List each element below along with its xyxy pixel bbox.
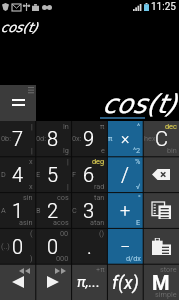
staticText: tan <box>94 193 105 202</box>
button[interactable]: π,... <box>71 264 107 300</box>
staticText: bin <box>167 146 177 155</box>
staticText: + <box>120 200 131 221</box>
staticText: E <box>136 218 141 227</box>
staticText: asin <box>19 218 33 227</box>
staticText: 0 <box>12 235 24 258</box>
staticText: | <box>31 146 33 155</box>
staticText: rad <box>94 182 105 191</box>
staticText: acos <box>53 218 69 227</box>
button[interactable]: Move left <box>0 264 35 300</box>
staticText: 0d: <box>36 134 46 143</box>
button[interactable]: 7 <box>0 121 35 156</box>
staticText: A <box>1 206 6 215</box>
staticText: ) <box>30 254 33 263</box>
staticText: B <box>36 206 41 215</box>
staticText: C <box>155 127 168 150</box>
button[interactable]: 9 <box>71 121 107 156</box>
staticText: deg <box>92 157 105 166</box>
button[interactable]: 8 <box>35 121 71 156</box>
button[interactable]: Equals <box>0 85 36 121</box>
staticText: hex <box>144 134 156 143</box>
staticText: store <box>160 265 177 274</box>
staticText: D <box>1 170 6 179</box>
button[interactable]: 0 <box>35 228 71 264</box>
staticText: 3 <box>83 199 95 222</box>
staticText: cos(t) <box>103 89 178 119</box>
button[interactable]: 0 <box>0 228 35 264</box>
staticText: √ <box>136 182 141 191</box>
staticText: simple <box>155 290 177 299</box>
button[interactable]: 4 <box>0 156 35 192</box>
staticText: × <box>121 129 130 148</box>
staticText: cos <box>57 193 69 202</box>
button[interactable]: 1 <box>0 192 35 228</box>
staticText: x <box>29 157 33 166</box>
staticText: dec <box>165 122 177 131</box>
staticText: cos(t) <box>1 20 39 35</box>
staticText: 4 <box>12 163 24 186</box>
staticText: (..) <box>1 242 10 251</box>
staticText: 1 <box>12 199 24 222</box>
button[interactable]: + <box>107 192 143 228</box>
button[interactable]: C <box>143 121 179 156</box>
staticText: e <box>101 146 105 155</box>
staticText: π <box>108 134 113 143</box>
staticText: ^2 <box>133 146 141 155</box>
staticText: sin <box>23 193 33 202</box>
staticText: π <box>100 122 105 131</box>
staticText: . <box>87 235 92 258</box>
staticText: +π <box>96 265 105 274</box>
staticText: C <box>72 206 77 215</box>
button[interactable]: 3 <box>71 192 107 228</box>
staticText: 9 <box>83 127 95 150</box>
staticText: 0 <box>47 235 59 258</box>
staticText: 6 <box>83 163 95 186</box>
button[interactable]: M <box>143 264 179 300</box>
staticText: lg <box>63 146 69 155</box>
staticText: π,... <box>77 273 101 291</box>
button[interactable]: 5 <box>35 156 71 192</box>
staticText: 5 <box>47 163 59 186</box>
button[interactable]: × <box>107 121 143 156</box>
button[interactable]: Copy <box>143 192 179 228</box>
button[interactable]: Backspace <box>143 156 179 192</box>
button[interactable]: 2 <box>35 192 71 228</box>
staticText: − <box>120 236 131 257</box>
button[interactable]: Move right <box>35 264 71 300</box>
staticText: x <box>29 182 33 191</box>
staticText: 2 <box>47 199 59 222</box>
staticText: E <box>36 170 41 179</box>
staticText: / <box>121 163 129 186</box>
staticText: | <box>67 182 69 191</box>
staticText: ( <box>30 229 33 238</box>
staticText: 0b: <box>1 134 11 143</box>
staticText: () <box>99 229 105 238</box>
button[interactable]: / <box>107 156 143 192</box>
staticText: f(x) <box>112 272 139 293</box>
staticText: % <box>135 157 141 166</box>
staticText: | <box>31 122 33 131</box>
staticText: atan <box>90 218 105 227</box>
staticText: 7 <box>12 127 24 150</box>
staticText: 00 <box>60 229 69 238</box>
staticText: | <box>67 157 69 166</box>
staticText: 8 <box>47 127 59 150</box>
staticText: 000 <box>56 254 69 263</box>
staticText: d/dx <box>126 254 141 263</box>
button[interactable]: . <box>71 228 107 264</box>
button[interactable]: f(x) <box>107 264 143 300</box>
button[interactable]: − <box>107 228 143 264</box>
staticText: ^ <box>137 122 141 131</box>
staticText: M <box>152 271 170 294</box>
button[interactable]: Paste <box>143 228 179 264</box>
staticText: F <box>72 170 77 179</box>
staticText: ° <box>138 193 141 202</box>
staticText: ln <box>63 122 69 131</box>
button[interactable]: 6 <box>71 156 107 192</box>
staticText: 11:25 <box>151 1 176 13</box>
staticText: 0x: <box>72 134 82 143</box>
